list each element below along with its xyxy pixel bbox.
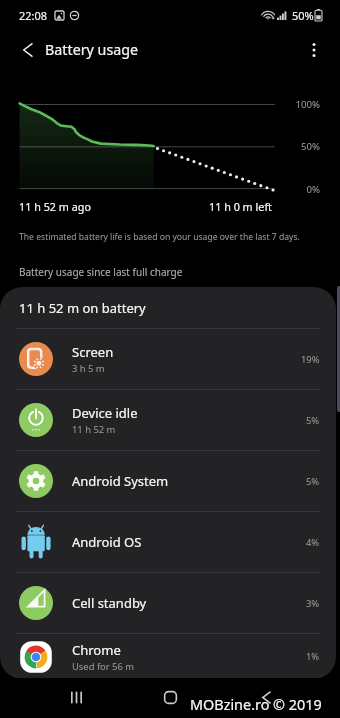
button[interactable]: Cell standby [0, 573, 336, 633]
staticText: 11 h 52 m [72, 423, 116, 436]
staticText: 50% [280, 140, 320, 153]
button[interactable]: More options [294, 30, 334, 70]
staticText: 0% [280, 183, 320, 196]
button[interactable]: Device idle [0, 390, 336, 450]
staticText: 11 h 52 m ago [19, 199, 91, 214]
staticText: Device idle [72, 404, 138, 422]
button[interactable]: Recents [54, 678, 99, 716]
button[interactable]: Screen [0, 329, 336, 389]
staticText: MOBzine.ro © 2019 [190, 695, 322, 715]
button[interactable]: Home [148, 678, 193, 716]
button[interactable]: Android System [0, 451, 336, 511]
staticText: 1% [306, 650, 320, 663]
staticText: 5% [306, 414, 320, 427]
staticText: 4% [306, 536, 320, 549]
staticText: 19% [301, 353, 320, 366]
staticText: Screen [72, 343, 114, 361]
staticText: 3% [306, 597, 320, 610]
staticText: 5% [306, 475, 320, 488]
button[interactable]: Back [8, 30, 47, 70]
staticText: Battery usage [45, 40, 139, 59]
staticText: 11 h 52 m on battery [19, 299, 146, 317]
staticText: The estimated battery life is based on y… [19, 231, 300, 243]
staticText: 50% [292, 8, 314, 23]
staticText: Chrome [72, 641, 121, 659]
staticText: 22:08 [19, 8, 48, 23]
staticText: Android System [72, 472, 169, 490]
staticText: Battery usage since last full charge [19, 265, 183, 279]
staticText: Android OS [72, 533, 142, 551]
button[interactable]: Chrome [0, 634, 336, 679]
staticText: Cell standby [72, 594, 147, 612]
button[interactable]: Back [244, 678, 289, 716]
staticText: 100% [280, 98, 320, 111]
staticText: 11 h 0 m left [209, 199, 273, 214]
button[interactable]: Android OS [0, 512, 336, 572]
staticText: Used for 56 m [72, 660, 135, 673]
staticText: 3 h 5 m [72, 362, 105, 375]
